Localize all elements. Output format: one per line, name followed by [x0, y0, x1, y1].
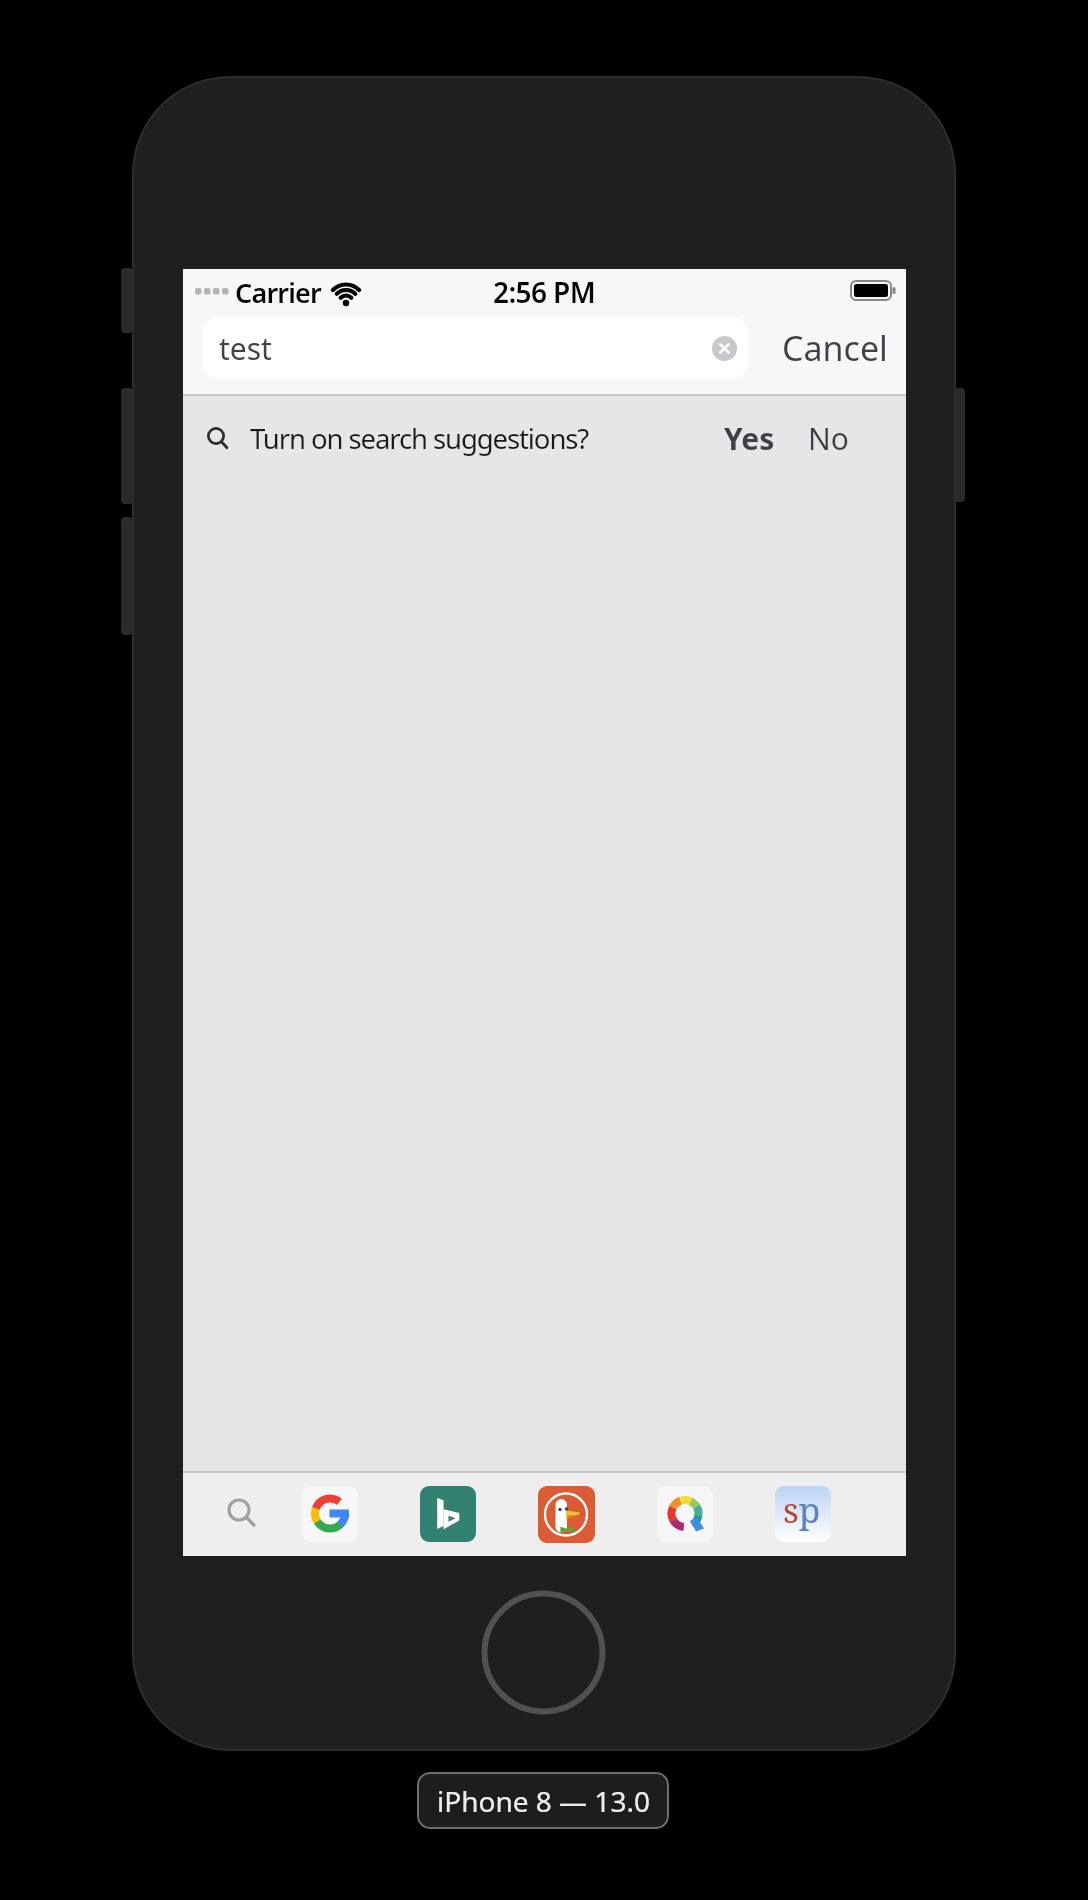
button[interactable]: sp [775, 1486, 831, 1542]
staticText: Cancel [782, 325, 888, 371]
button[interactable] [478, 1587, 609, 1718]
button[interactable]: Cancel [758, 317, 888, 379]
staticText: Yes [724, 418, 775, 459]
staticText: iPhone 8 — 13.0 [437, 1782, 650, 1820]
staticText: sp [783, 1486, 821, 1534]
button[interactable] [420, 1486, 476, 1542]
button[interactable] [219, 1490, 267, 1538]
staticText: No [808, 418, 849, 459]
button[interactable]: No [793, 395, 863, 481]
staticText: 2:56 PM [493, 273, 596, 311]
button[interactable] [538, 1486, 595, 1543]
staticText: Turn on search suggestions? [250, 420, 589, 457]
staticText: Carrier [235, 274, 322, 311]
button[interactable]: test [203, 317, 748, 379]
button[interactable] [302, 1486, 358, 1542]
button[interactable] [657, 1486, 713, 1542]
staticText: test [219, 328, 272, 369]
button[interactable]: Yes [711, 395, 787, 481]
